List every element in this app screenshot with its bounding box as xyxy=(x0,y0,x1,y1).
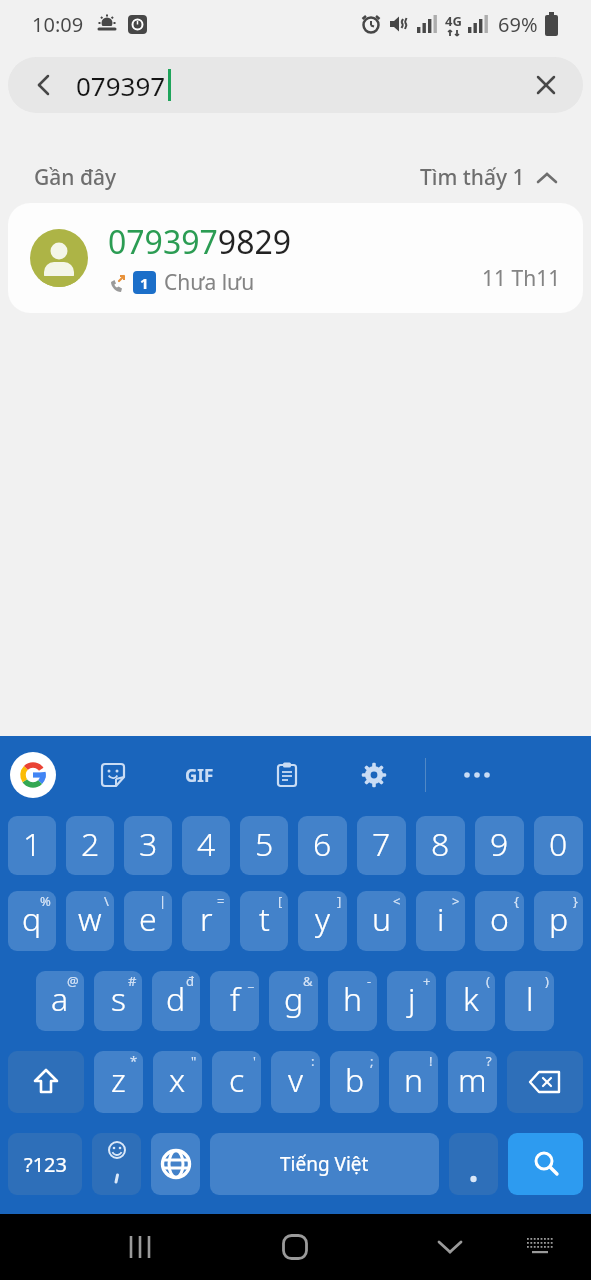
staticText: r xyxy=(200,897,213,941)
staticText: { xyxy=(514,892,519,910)
button[interactable]: d xyxy=(152,971,200,1031)
button[interactable]: 3 xyxy=(124,816,172,875)
staticText: + xyxy=(423,972,431,990)
staticText: Tìm thấy 1 xyxy=(420,163,525,192)
staticText: : xyxy=(311,1052,315,1070)
button[interactable] xyxy=(85,747,141,803)
button[interactable]: 9 xyxy=(475,816,524,875)
staticText: 11 Th11 xyxy=(482,264,561,293)
button[interactable]: r xyxy=(182,891,230,951)
staticText: @ xyxy=(67,972,79,990)
staticText: ; xyxy=(370,1052,374,1070)
staticText: s xyxy=(111,977,126,1021)
staticText: 0793979829 xyxy=(108,220,292,264)
staticText: " xyxy=(191,1052,197,1070)
button[interactable]: 4 xyxy=(182,816,230,875)
button[interactable]: x xyxy=(153,1051,202,1113)
button[interactable]: 1 xyxy=(8,816,56,875)
button[interactable]: GIF xyxy=(171,747,227,803)
button[interactable]: t xyxy=(240,891,288,951)
staticText: 8 xyxy=(431,822,450,866)
button[interactable] xyxy=(418,1215,482,1279)
button[interactable] xyxy=(508,1133,583,1195)
staticText: - xyxy=(367,972,372,990)
button[interactable] xyxy=(346,747,402,803)
button[interactable]: p xyxy=(534,891,583,951)
staticText: u xyxy=(372,897,392,941)
button[interactable]: ?123 xyxy=(8,1133,82,1195)
staticText: o xyxy=(490,897,509,941)
staticText: z xyxy=(111,1058,126,1102)
staticText: ? xyxy=(486,1052,492,1070)
button[interactable] xyxy=(449,747,505,803)
staticText: 5 xyxy=(255,822,274,866)
button[interactable] xyxy=(507,1051,583,1113)
button[interactable]: w xyxy=(66,891,114,951)
button[interactable]: y xyxy=(298,891,347,951)
staticText: [ xyxy=(278,892,283,910)
staticText: ' xyxy=(253,1052,256,1070)
button[interactable]: o xyxy=(475,891,524,951)
button[interactable] xyxy=(151,1133,200,1195)
button[interactable]: e xyxy=(124,891,172,951)
button[interactable] xyxy=(92,1133,141,1195)
staticText: \ xyxy=(104,892,109,910)
button[interactable] xyxy=(16,57,72,113)
button[interactable]: 8 xyxy=(416,816,465,875)
button[interactable] xyxy=(263,1215,327,1279)
staticText: 4G xyxy=(445,12,462,30)
staticText: e xyxy=(139,897,157,941)
button[interactable]: 5 xyxy=(240,816,288,875)
button[interactable] xyxy=(8,1051,84,1113)
staticText: < xyxy=(393,892,401,910)
button[interactable]: 2 xyxy=(66,816,114,875)
staticText: ) xyxy=(545,972,549,990)
button[interactable]: 0 xyxy=(534,816,583,875)
button[interactable]: m xyxy=(448,1051,497,1113)
button[interactable]: g xyxy=(269,971,318,1031)
button[interactable]: u xyxy=(357,891,406,951)
button[interactable]: 7 xyxy=(357,816,406,875)
staticText: } xyxy=(573,892,578,910)
staticText: c xyxy=(229,1058,245,1102)
staticText: _ xyxy=(248,972,254,990)
button[interactable]: n xyxy=(389,1051,438,1113)
button[interactable]: q xyxy=(8,891,56,951)
staticText: * xyxy=(130,1052,138,1070)
button[interactable]: l xyxy=(505,971,554,1031)
button[interactable]: k xyxy=(446,971,495,1031)
button[interactable]: f xyxy=(210,971,259,1031)
button[interactable]: j xyxy=(387,971,436,1031)
staticText: n xyxy=(404,1058,424,1102)
button[interactable] xyxy=(108,1215,172,1279)
staticText: j xyxy=(408,977,416,1021)
staticText: 69% xyxy=(498,11,538,38)
button[interactable] xyxy=(518,57,574,113)
button[interactable]: i xyxy=(416,891,465,951)
button[interactable] xyxy=(259,747,315,803)
button[interactable]: v xyxy=(271,1051,320,1113)
button[interactable]: h xyxy=(328,971,377,1031)
staticText: 1 xyxy=(23,822,42,866)
staticText: ] xyxy=(337,892,342,910)
staticText: ( xyxy=(486,972,490,990)
button[interactable] xyxy=(510,1217,570,1277)
button[interactable]: z xyxy=(94,1051,143,1113)
button[interactable]: 0793979829 xyxy=(8,203,583,313)
button[interactable]: 6 xyxy=(298,816,347,875)
button[interactable]: b xyxy=(330,1051,379,1113)
staticText: ! xyxy=(429,1052,433,1070)
staticText: | xyxy=(159,892,167,910)
button[interactable]: a xyxy=(36,971,84,1031)
button[interactable]: Tìm thấy 1 xyxy=(420,163,557,192)
button[interactable] xyxy=(449,1133,498,1195)
staticText: k xyxy=(463,977,479,1021)
button[interactable]: Tiếng Việt xyxy=(210,1133,439,1195)
button[interactable]: s xyxy=(94,971,142,1031)
staticText: 4 xyxy=(197,822,216,866)
staticText: Chưa lưu xyxy=(164,268,255,297)
staticText: > xyxy=(452,892,460,910)
staticText: p xyxy=(549,897,569,941)
button[interactable]: c xyxy=(212,1051,261,1113)
button[interactable] xyxy=(10,752,56,798)
